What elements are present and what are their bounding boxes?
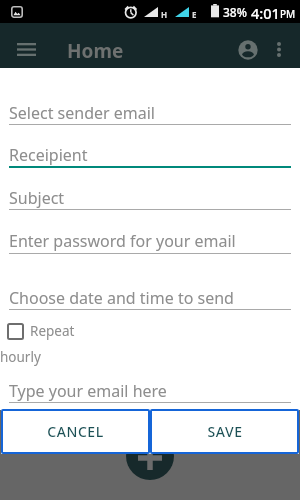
staticText: PM (280, 7, 296, 21)
staticText: H (161, 9, 168, 20)
staticText: Repeat (30, 322, 75, 340)
button[interactable]: Enter password for your email (9, 230, 300, 252)
staticText: E (192, 9, 197, 20)
staticText: SAVE (207, 422, 243, 441)
button[interactable]: Repeat (7, 322, 75, 340)
button[interactable]: More options (265, 35, 293, 63)
button[interactable]: Type your email here (9, 380, 300, 402)
button[interactable]: Receipient (9, 144, 300, 166)
staticText: Home (67, 38, 124, 64)
button[interactable]: Choose date and time to send (9, 287, 300, 309)
staticText: 38% (223, 4, 247, 20)
button[interactable]: Select sender email (9, 102, 300, 124)
staticText: 4:01 (251, 3, 280, 23)
button[interactable]: Add (126, 432, 174, 480)
button[interactable]: Subject (9, 187, 300, 209)
button[interactable]: Open navigation menu (9, 32, 43, 66)
button[interactable]: Account (232, 34, 264, 66)
button[interactable]: SAVE (150, 409, 299, 454)
staticText: CANCEL (47, 422, 104, 441)
staticText: hourly (0, 348, 41, 366)
button[interactable]: CANCEL (1, 409, 150, 454)
